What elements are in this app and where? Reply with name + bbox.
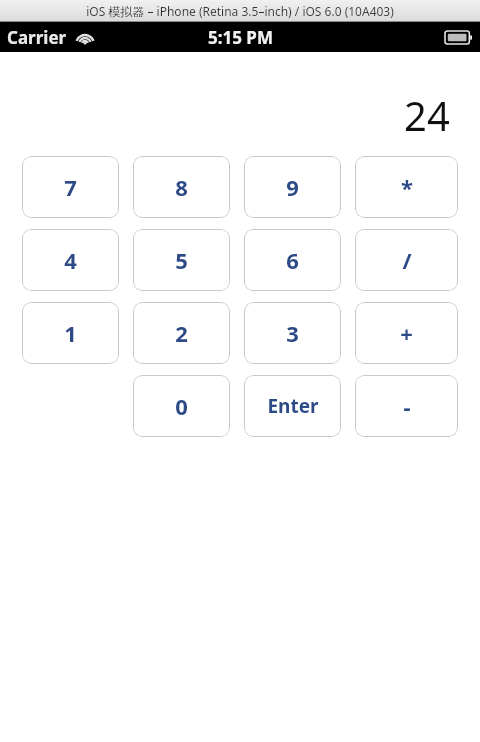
button[interactable]: - <box>355 375 458 437</box>
staticText: - <box>403 391 411 421</box>
button[interactable]: 6 <box>244 229 341 291</box>
staticText: 8 <box>175 172 188 202</box>
button[interactable]: 0 <box>133 375 230 437</box>
staticText: 4 <box>64 245 77 275</box>
staticText: 24 <box>404 88 450 142</box>
staticText: iOS 模拟器 – iPhone (Retina 3.5–inch) / iOS… <box>86 3 394 19</box>
button[interactable]: 5 <box>133 229 230 291</box>
button[interactable]: 1 <box>22 302 119 364</box>
button[interactable]: * <box>355 156 458 218</box>
staticText: 5 <box>175 245 188 275</box>
staticText: Carrier <box>7 26 67 49</box>
button[interactable]: 2 <box>133 302 230 364</box>
staticText: * <box>401 172 413 202</box>
staticText: / <box>402 245 412 275</box>
button[interactable]: 4 <box>22 229 119 291</box>
button[interactable]: + <box>355 302 458 364</box>
button[interactable]: 3 <box>244 302 341 364</box>
staticText: 0 <box>175 391 188 421</box>
button[interactable]: 9 <box>244 156 341 218</box>
staticText: 6 <box>286 245 299 275</box>
staticText: 1 <box>64 318 77 348</box>
staticText: 9 <box>286 172 299 202</box>
staticText: 7 <box>64 172 77 202</box>
button[interactable]: 7 <box>22 156 119 218</box>
staticText: 3 <box>286 318 299 348</box>
staticText: + <box>400 318 413 348</box>
button[interactable]: Enter <box>244 375 341 437</box>
button[interactable]: / <box>355 229 458 291</box>
button[interactable]: 8 <box>133 156 230 218</box>
staticText: 2 <box>175 318 188 348</box>
staticText: 5:15 PM <box>208 26 273 49</box>
staticText: Enter <box>267 393 319 419</box>
